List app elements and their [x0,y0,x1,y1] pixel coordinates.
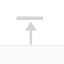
button[interactable]: Upload [4,4,59,59]
